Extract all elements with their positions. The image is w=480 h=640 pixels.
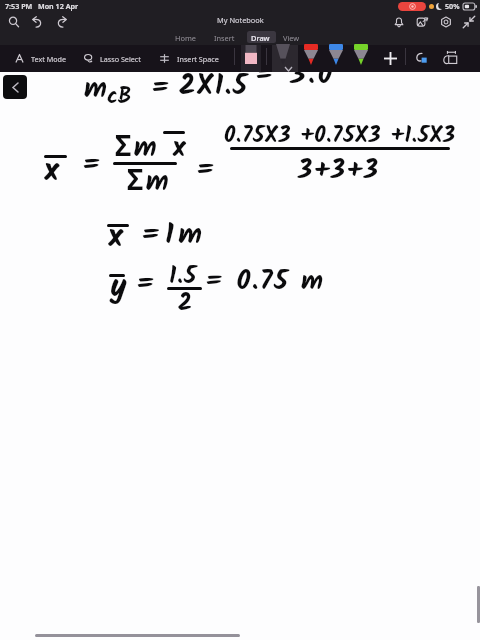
button[interactable]: Settings (438, 14, 453, 29)
staticText: 0.75X3 +0.75X3 +1.5X3 (224, 119, 456, 154)
button[interactable]: Back (3, 75, 27, 99)
button[interactable] (12, 48, 82, 65)
staticText: = (82, 143, 101, 188)
staticText: y (110, 262, 127, 313)
staticText: Mon 12 Apr (38, 1, 79, 11)
staticText: Lasso Select (100, 54, 141, 64)
button[interactable]: Notifications (391, 14, 406, 29)
staticText: Insert Space (177, 54, 219, 64)
staticText: 50% (445, 1, 460, 11)
staticText: = (196, 148, 215, 193)
staticText: Home (175, 33, 197, 43)
staticText: = (136, 262, 155, 307)
staticText: = 3.0 (255, 72, 335, 98)
button[interactable]: Undo (29, 14, 44, 29)
button[interactable] (247, 31, 276, 43)
button[interactable]: Ink to shape (413, 49, 431, 67)
staticText: x (108, 212, 124, 263)
button[interactable] (279, 31, 305, 43)
staticText: Insert (214, 33, 235, 43)
staticText: =1m (141, 212, 207, 258)
button[interactable]: Pen (272, 45, 298, 72)
button[interactable] (171, 31, 202, 43)
staticText: Σm (127, 160, 172, 205)
button[interactable] (81, 48, 159, 65)
staticText: m (84, 72, 107, 112)
button[interactable]: Redo (54, 14, 69, 29)
staticText: cB (107, 80, 132, 115)
button[interactable]: Collapse (461, 14, 476, 29)
staticText: 1.5 (169, 257, 198, 295)
staticText: = 0.75 m (205, 260, 325, 303)
button[interactable]: Add pen (381, 49, 399, 67)
staticText: 2 (178, 284, 192, 322)
button[interactable]: Ink to math (441, 49, 459, 67)
staticText: 3+3+3 (298, 150, 380, 191)
staticText: x (44, 146, 60, 197)
button[interactable]: Pen (350, 45, 372, 72)
button[interactable]: Eraser (241, 45, 261, 72)
staticText: Text Mode (31, 54, 67, 64)
staticText: Σm x (115, 126, 189, 171)
button[interactable]: Pen (300, 45, 322, 72)
staticText: 7:53 PM (5, 1, 33, 11)
button[interactable]: Pen (325, 45, 347, 72)
staticText: View (283, 33, 300, 43)
staticText: 2X1.5 (179, 72, 249, 109)
staticText: Draw (251, 33, 270, 43)
button[interactable]: Search (6, 14, 21, 29)
button[interactable]: Share (414, 14, 429, 29)
staticText: My Notebook (217, 15, 264, 25)
button[interactable] (157, 48, 236, 65)
staticText: = (151, 72, 170, 111)
button[interactable] (209, 31, 238, 43)
